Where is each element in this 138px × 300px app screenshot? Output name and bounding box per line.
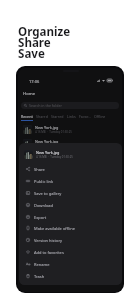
button[interactable]: New York.jpg xyxy=(23,138,121,148)
staticText: Organize xyxy=(18,24,71,40)
button[interactable]: Recent xyxy=(21,114,36,121)
staticText: Links xyxy=(67,114,76,119)
staticText: Download xyxy=(34,203,54,208)
staticText: 4.16 MB · Tuesday 01:30:25 xyxy=(36,155,73,159)
staticText: Save xyxy=(18,46,45,62)
staticText: Trash xyxy=(34,274,45,279)
button[interactable]: Make available offline xyxy=(19,222,122,234)
staticText: New York.jpg xyxy=(36,150,60,155)
staticText: Save to gallery xyxy=(34,191,62,196)
button[interactable]: Download xyxy=(19,199,122,211)
button[interactable]: Favor... xyxy=(79,114,94,121)
button[interactable]: Search in the folder xyxy=(21,102,119,109)
button[interactable]: Export xyxy=(19,211,122,223)
button[interactable]: Public link xyxy=(19,175,122,187)
staticText: New York.jpg xyxy=(35,139,59,144)
staticText: Rename xyxy=(34,262,50,267)
button[interactable]: Starred xyxy=(51,114,67,121)
staticText: Starred xyxy=(51,114,64,119)
button[interactable]: Offline xyxy=(94,114,109,121)
staticText: Shared xyxy=(36,114,48,119)
button[interactable]: Add to favorites xyxy=(19,246,122,258)
staticText: Favor... xyxy=(79,114,91,119)
staticText: Search in the folder xyxy=(29,103,62,108)
button[interactable]: New York.jpg xyxy=(23,124,121,134)
button[interactable]: Version history xyxy=(19,234,122,246)
staticText: Share xyxy=(34,167,45,172)
staticText: Share xyxy=(18,35,51,51)
staticText: Add to favorites xyxy=(34,250,64,255)
staticText: Recent xyxy=(21,114,33,119)
button[interactable]: Trash xyxy=(19,270,122,282)
button[interactable]: Share xyxy=(19,163,122,175)
button[interactable]: Rename xyxy=(19,258,122,270)
button[interactable]: Save to gallery xyxy=(19,187,122,199)
staticText: Version history xyxy=(34,238,63,243)
staticText: 4.16 MB · Tuesday 01:30:25 xyxy=(35,130,72,134)
button[interactable]: Shared xyxy=(36,114,51,121)
staticText: Make available offline xyxy=(34,226,75,231)
staticText: Export xyxy=(34,215,47,220)
button[interactable]: Links xyxy=(67,114,79,121)
staticText: Public link xyxy=(34,179,54,184)
staticText: New York.jpg xyxy=(35,125,59,130)
staticText: Home xyxy=(23,91,36,97)
staticText: 17:06 xyxy=(29,79,40,84)
staticText: Offline xyxy=(94,114,106,119)
